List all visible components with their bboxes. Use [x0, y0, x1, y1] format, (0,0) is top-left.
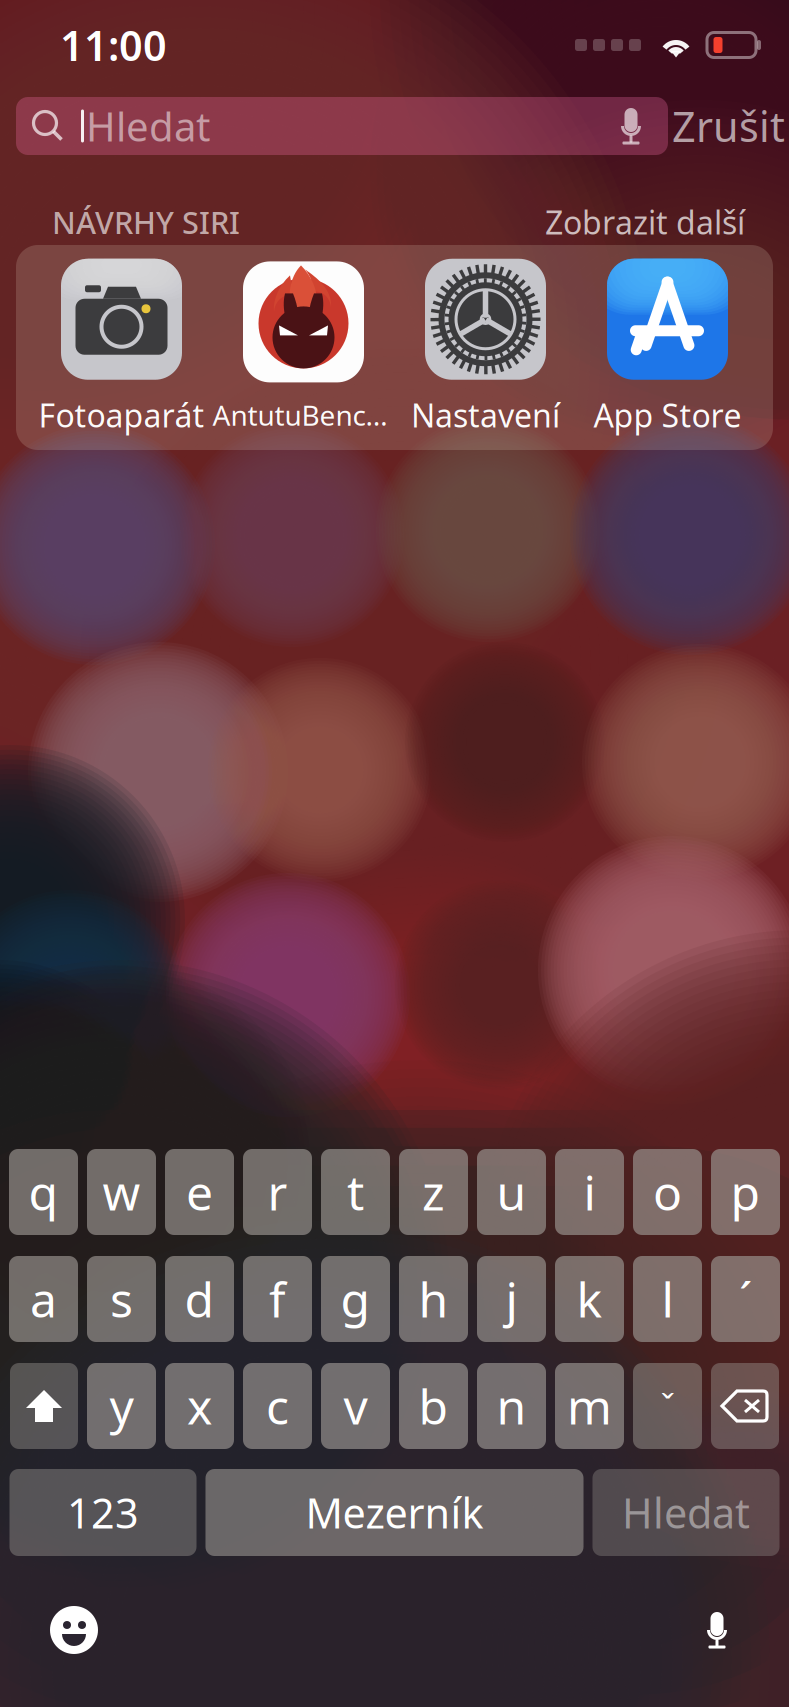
- button[interactable]: w: [87, 1149, 156, 1235]
- staticText: x: [187, 1374, 212, 1438]
- staticText: n: [496, 1374, 526, 1438]
- staticText: f: [269, 1267, 286, 1331]
- button[interactable]: App Store: [576, 261, 758, 434]
- button[interactable]: Hledat: [16, 97, 668, 155]
- staticText: Zobrazit další: [545, 201, 745, 243]
- button[interactable]: q: [9, 1149, 78, 1235]
- button[interactable]: d: [165, 1256, 234, 1342]
- button[interactable]: f: [243, 1256, 312, 1342]
- staticText: Mezerník: [305, 1485, 483, 1540]
- staticText: z: [422, 1160, 445, 1224]
- button[interactable]: n: [477, 1363, 546, 1449]
- button[interactable]: v: [321, 1363, 390, 1449]
- staticText: Hledat: [86, 99, 210, 152]
- button[interactable]: Shift: [10, 1363, 78, 1449]
- button[interactable]: Nastavení: [394, 261, 576, 434]
- button[interactable]: Zobrazit další: [545, 201, 745, 243]
- staticText: 123: [67, 1485, 139, 1540]
- button[interactable]: Zrušit: [668, 97, 789, 155]
- staticText: v: [343, 1374, 367, 1438]
- button[interactable]: s: [87, 1256, 156, 1342]
- button[interactable]: AntutuBenchm…: [212, 261, 394, 434]
- staticText: Zrušit: [672, 99, 785, 153]
- staticText: s: [110, 1267, 133, 1331]
- staticText: q: [28, 1160, 58, 1224]
- staticText: l: [661, 1267, 673, 1331]
- staticText: AntutuBenchm…: [212, 396, 394, 434]
- staticText: a: [30, 1267, 57, 1331]
- button[interactable]: a: [9, 1256, 78, 1342]
- staticText: u: [496, 1160, 526, 1224]
- button[interactable]: y: [87, 1363, 156, 1449]
- staticText: App Store: [593, 394, 741, 436]
- staticText: j: [505, 1267, 517, 1331]
- button[interactable]: u: [477, 1149, 546, 1235]
- button[interactable]: p: [711, 1149, 780, 1235]
- staticText: t: [347, 1160, 364, 1224]
- button[interactable]: Dictation: [697, 1602, 737, 1658]
- button[interactable]: g: [321, 1256, 390, 1342]
- staticText: c: [266, 1374, 289, 1438]
- staticText: w: [102, 1160, 140, 1224]
- staticText: NÁVRHY SIRI: [52, 202, 240, 242]
- staticText: i: [583, 1160, 595, 1224]
- button[interactable]: Backspace: [711, 1363, 779, 1449]
- staticText: p: [730, 1160, 760, 1224]
- staticText: d: [184, 1267, 214, 1331]
- button[interactable]: e: [165, 1149, 234, 1235]
- button[interactable]: Hledat: [592, 1469, 779, 1556]
- staticText: m: [567, 1374, 612, 1438]
- staticText: k: [576, 1267, 602, 1331]
- button[interactable]: x: [165, 1363, 234, 1449]
- staticText: h: [418, 1267, 448, 1331]
- button[interactable]: t: [321, 1149, 390, 1235]
- button[interactable]: l: [633, 1256, 702, 1342]
- button[interactable]: o: [633, 1149, 702, 1235]
- staticText: r: [267, 1160, 287, 1224]
- button[interactable]: h: [399, 1256, 468, 1342]
- button[interactable]: r: [243, 1149, 312, 1235]
- staticText: Fotoaparát: [38, 394, 204, 436]
- staticText: o: [653, 1160, 682, 1224]
- staticText: b: [418, 1374, 448, 1438]
- button[interactable]: ´: [711, 1256, 780, 1342]
- button[interactable]: i: [555, 1149, 624, 1235]
- button[interactable]: Mezerník: [205, 1469, 583, 1556]
- staticText: ˇ: [660, 1383, 674, 1429]
- staticText: y: [109, 1374, 133, 1438]
- staticText: ´: [739, 1267, 752, 1331]
- button[interactable]: k: [555, 1256, 624, 1342]
- button[interactable]: Fotoaparát: [30, 261, 212, 434]
- button[interactable]: m: [555, 1363, 624, 1449]
- button[interactable]: b: [399, 1363, 468, 1449]
- staticText: e: [186, 1160, 213, 1224]
- staticText: Nastavení: [411, 394, 560, 436]
- button[interactable]: Emoji: [50, 1606, 98, 1654]
- staticText: Hledat: [622, 1485, 750, 1540]
- staticText: g: [340, 1267, 370, 1331]
- button[interactable]: ˇ: [633, 1363, 702, 1449]
- button[interactable]: z: [399, 1149, 468, 1235]
- staticText: 11:00: [60, 18, 167, 72]
- button[interactable]: 123: [9, 1469, 196, 1556]
- button[interactable]: j: [477, 1256, 546, 1342]
- button[interactable]: c: [243, 1363, 312, 1449]
